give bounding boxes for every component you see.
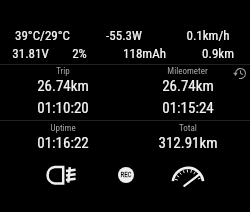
staticText: 0.1km/h [186, 28, 230, 43]
staticText: 01:16:22 [37, 134, 89, 149]
staticText: 01:10:20 [37, 99, 89, 114]
staticText: 118mAh [123, 46, 166, 61]
button[interactable]: Headlight [20, 156, 104, 194]
staticText: -55.3W [106, 28, 142, 43]
button[interactable]: Speedometer [146, 156, 229, 194]
staticText: 26.74km [162, 77, 214, 92]
staticText: Uptime [50, 123, 76, 134]
staticText: 31.81V [12, 46, 49, 61]
staticText: 2% [72, 46, 87, 61]
button[interactable]: Reset trip history [232, 65, 248, 81]
staticText: Total [179, 123, 197, 134]
staticText: 0.9km [202, 46, 234, 61]
staticText: 01:15:24 [162, 99, 214, 114]
staticText: REC [120, 171, 132, 179]
staticText: 312.91km [158, 134, 218, 149]
staticText: Mileometer [167, 66, 208, 77]
staticText: 39°C/29°C [15, 28, 70, 43]
button[interactable]: Record [84, 156, 167, 194]
staticText: Trip [56, 66, 70, 77]
staticText: 26.74km [37, 77, 89, 92]
